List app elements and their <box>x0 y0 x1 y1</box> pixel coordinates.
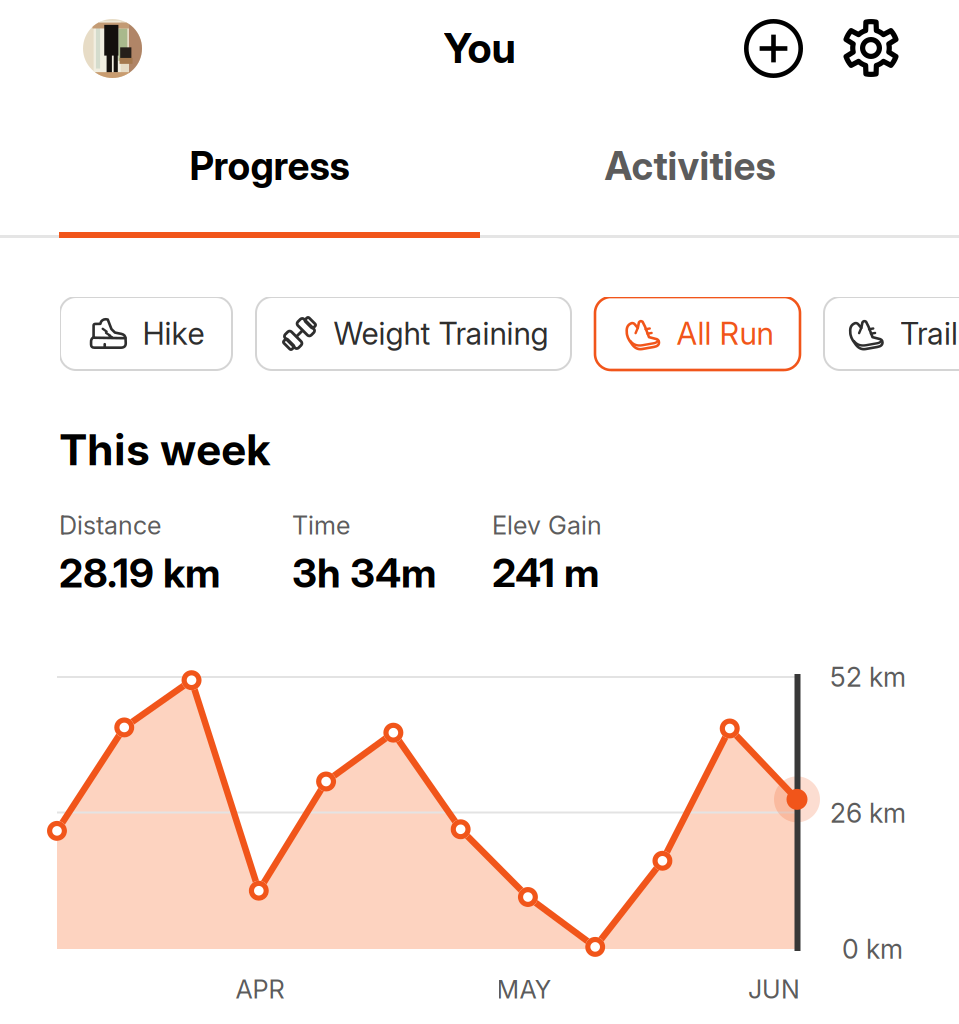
staticText: 26 km <box>830 797 906 829</box>
staticText: Hike <box>142 315 204 352</box>
staticText: Time <box>292 510 350 541</box>
button[interactable]: Trail Run <box>824 297 959 370</box>
staticText: You <box>443 23 515 73</box>
button[interactable]: All Run <box>595 297 800 370</box>
staticText: Trail Run <box>900 315 959 352</box>
staticText: Elev Gain <box>492 510 602 541</box>
staticText: All Run <box>676 315 773 352</box>
staticText: 0 km <box>842 933 903 965</box>
staticText: Progress <box>189 143 349 189</box>
staticText: 3h 34m <box>292 549 436 597</box>
button[interactable]: Hike <box>60 297 232 370</box>
staticText: Activities <box>604 143 775 189</box>
staticText: Weight Training <box>333 315 548 352</box>
staticText: 52 km <box>830 661 906 693</box>
button[interactable]: Add activity <box>744 19 803 78</box>
button[interactable]: Progress <box>59 98 480 234</box>
staticText: MAY <box>496 974 551 1005</box>
staticText: 241 m <box>492 549 599 597</box>
button[interactable]: Settings <box>842 19 900 77</box>
staticText: Distance <box>59 510 161 541</box>
button[interactable]: Activities <box>480 98 900 234</box>
staticText: This week <box>59 424 271 476</box>
staticText: JUN <box>748 974 800 1005</box>
staticText: APR <box>235 974 284 1005</box>
button[interactable]: Profile <box>83 19 142 78</box>
staticText: 28.19 km <box>59 549 220 597</box>
button[interactable]: Weight Training <box>256 297 571 370</box>
